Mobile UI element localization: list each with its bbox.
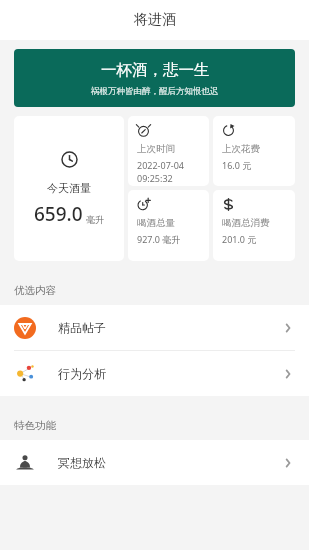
staticText: 精品帖子: [58, 320, 106, 335]
button[interactable]: 喝酒总量: [128, 190, 209, 261]
staticText: 祸根万种皆由醉，醒后方知恨也迟: [91, 86, 219, 97]
staticText: 201.0 元: [222, 233, 257, 245]
staticText: 上次花费: [222, 143, 260, 155]
button[interactable]: 一杯酒，悲一生: [14, 49, 295, 107]
staticText: 16.0 元: [222, 159, 252, 171]
staticText: 上次时间: [137, 143, 175, 155]
staticText: 一杯酒，悲一生: [101, 60, 210, 80]
staticText: 冥想放松: [58, 455, 106, 470]
button[interactable]: 上次时间: [128, 116, 209, 186]
staticText: 659.0: [34, 201, 83, 227]
staticText: 2022-07-04: [137, 159, 184, 171]
staticText: 特色功能: [14, 419, 56, 432]
button[interactable]: 行为分析: [0, 351, 309, 396]
staticText: 毫升: [86, 214, 104, 225]
button[interactable]: 今天酒量: [14, 116, 124, 261]
button[interactable]: 上次花费: [213, 116, 295, 186]
button[interactable]: 精品帖子: [0, 305, 309, 350]
staticText: 将进酒: [134, 11, 176, 29]
staticText: 喝酒总量: [137, 217, 175, 229]
button[interactable]: 冥想放松: [0, 440, 309, 485]
staticText: 喝酒总消费: [222, 217, 270, 229]
staticText: 行为分析: [58, 366, 106, 381]
staticText: 927.0 毫升: [137, 233, 181, 245]
button[interactable]: 喝酒总消费: [213, 190, 295, 261]
staticText: 优选内容: [14, 284, 56, 297]
staticText: 09:25:32: [137, 172, 173, 184]
staticText: 今天酒量: [47, 181, 91, 195]
